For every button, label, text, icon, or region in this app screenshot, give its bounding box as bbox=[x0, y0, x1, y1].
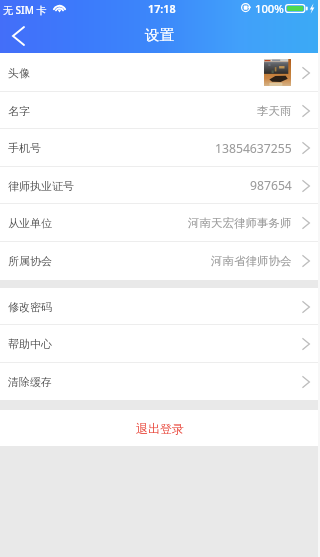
staticText: 100% bbox=[255, 1, 284, 16]
staticText: 清除缓存 bbox=[8, 375, 52, 389]
staticText: 17:18 bbox=[148, 1, 176, 16]
staticText: 律师执业证号 bbox=[8, 179, 74, 193]
button[interactable]: 名字 bbox=[0, 92, 320, 129]
button[interactable]: 帮助中心 bbox=[0, 325, 320, 363]
staticText: 987654 bbox=[250, 177, 292, 194]
staticText: 从业单位 bbox=[8, 216, 52, 230]
staticText: 无 SIM 卡 bbox=[3, 3, 47, 17]
staticText: 13854637255 bbox=[215, 140, 292, 157]
staticText: 所属协会 bbox=[8, 254, 52, 268]
staticText: 帮助中心 bbox=[8, 337, 52, 351]
button[interactable]: 清除缓存 bbox=[0, 363, 320, 400]
button[interactable]: 退出登录 bbox=[0, 410, 320, 446]
button[interactable]: 所属协会 bbox=[0, 242, 320, 280]
staticText: 名字 bbox=[8, 104, 30, 118]
button[interactable]: 头像 bbox=[0, 53, 320, 92]
staticText: 设置 bbox=[145, 26, 174, 44]
button[interactable]: 律师执业证号 bbox=[0, 167, 320, 204]
staticText: 退出登录 bbox=[136, 421, 184, 436]
staticText: 河南天宏律师事务师 bbox=[188, 216, 292, 230]
staticText: 李天雨 bbox=[257, 104, 292, 118]
button[interactable]: 手机号 bbox=[0, 129, 320, 167]
staticText: 河南省律师协会 bbox=[211, 254, 292, 268]
staticText: 头像 bbox=[8, 66, 30, 80]
button[interactable]: 从业单位 bbox=[0, 204, 320, 242]
button[interactable]: 修改密码 bbox=[0, 288, 320, 325]
staticText: 手机号 bbox=[8, 141, 41, 155]
button[interactable]: Back bbox=[0, 20, 37, 53]
staticText: 修改密码 bbox=[8, 300, 52, 314]
